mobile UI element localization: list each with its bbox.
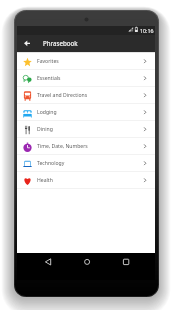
button[interactable]: Dining (17, 121, 155, 138)
button[interactable]: Time, Date, Numbers (17, 138, 155, 155)
staticText: Phrasebook (43, 39, 78, 47)
button[interactable]: Back (18, 35, 36, 52)
button[interactable]: Technology (17, 155, 155, 172)
staticText: Lodging (37, 109, 57, 116)
button[interactable]: Lodging (17, 104, 155, 121)
other: Navigation bar (17, 253, 155, 280)
staticText: 10:16 (140, 27, 154, 34)
staticText: Essentials (37, 75, 61, 82)
staticText: Travel and Directions (37, 92, 88, 99)
staticText: Technology (37, 160, 65, 167)
button[interactable]: Essentials (17, 70, 155, 87)
button[interactable]: Travel and Directions (17, 87, 155, 104)
staticText: Time, Date, Numbers (37, 143, 88, 150)
staticText: Dining (37, 126, 53, 133)
staticText: Health (37, 177, 53, 184)
staticText: Favorites (37, 58, 59, 65)
button[interactable]: Health (17, 172, 155, 189)
button[interactable]: Favorites (17, 53, 155, 70)
